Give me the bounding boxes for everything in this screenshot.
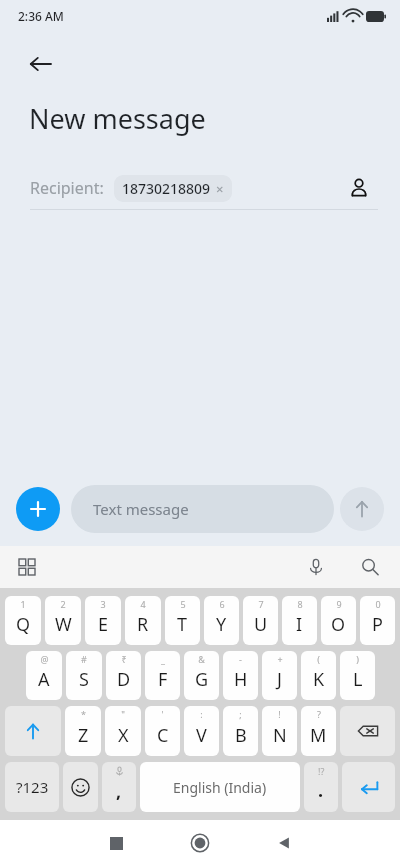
staticText: S [79, 667, 89, 692]
button[interactable]: 18730218809 [114, 175, 232, 202]
staticText: H [234, 667, 248, 692]
staticText: 0 [375, 598, 381, 610]
staticText: ! [278, 708, 281, 720]
button[interactable]: J [262, 651, 297, 700]
button[interactable]: L [340, 651, 375, 700]
button[interactable]: F [145, 651, 180, 700]
staticText: V [196, 723, 207, 748]
button[interactable]: Backspace [340, 706, 395, 756]
staticText: 5 [180, 598, 186, 610]
button[interactable]: T [165, 596, 200, 645]
staticText: 6 [219, 598, 225, 610]
button[interactable]: R [125, 596, 161, 645]
button[interactable]: K [301, 651, 336, 700]
button[interactable]: Y [204, 596, 239, 645]
staticText: & [198, 653, 205, 665]
staticText: 7 [258, 598, 264, 610]
button[interactable]: Voice input [300, 551, 332, 583]
staticText: B [235, 723, 247, 748]
staticText: " [121, 708, 125, 720]
button[interactable]: Q [5, 596, 41, 645]
staticText: C [157, 723, 169, 748]
staticText: * [81, 708, 86, 720]
staticText: W [55, 612, 72, 637]
button[interactable]: Keyboard menu [10, 550, 44, 584]
button[interactable]: N [262, 706, 297, 756]
staticText: ?123 [16, 777, 49, 797]
button[interactable]: Emoji [63, 762, 98, 812]
staticText: _ [161, 653, 165, 665]
staticText: O [331, 612, 346, 637]
button[interactable]: O [321, 596, 356, 645]
staticText: Q [16, 612, 31, 637]
staticText: - [239, 653, 242, 665]
staticText: ( [317, 653, 320, 665]
button[interactable]: Text message [71, 485, 334, 533]
staticText: 2:36 AM [18, 8, 64, 24]
button[interactable]: H [223, 651, 258, 700]
button[interactable]: Comma [102, 762, 136, 812]
button[interactable]: Home [176, 820, 224, 866]
button[interactable]: Z [65, 706, 101, 756]
button[interactable]: C [145, 706, 180, 756]
staticText: 9 [336, 598, 342, 610]
button[interactable]: Recent apps [92, 820, 140, 866]
button[interactable]: V [184, 706, 219, 756]
staticText: P [372, 612, 383, 637]
staticText: 3 [100, 598, 106, 610]
staticText: !? [318, 765, 325, 777]
staticText: J [277, 667, 282, 692]
staticText: 1 [20, 598, 26, 610]
staticText: Y [216, 612, 227, 637]
staticText: Recipient: [30, 177, 104, 199]
staticText: A [38, 667, 50, 692]
staticText: # [81, 653, 87, 665]
button[interactable]: G [184, 651, 219, 700]
button[interactable]: Back [16, 40, 64, 88]
button[interactable]: Search [354, 551, 386, 583]
button[interactable]: Add attachment [16, 487, 60, 531]
staticText: ₹ [121, 653, 127, 665]
staticText: ' [161, 708, 164, 720]
button[interactable]: P [360, 596, 395, 645]
button[interactable]: S [66, 651, 102, 700]
staticText: X [118, 723, 129, 748]
button[interactable]: W [45, 596, 81, 645]
button[interactable]: Shift [5, 706, 61, 756]
button[interactable]: Contacts [340, 169, 378, 207]
staticText: English (India) [173, 778, 267, 797]
staticText: ? [317, 708, 321, 720]
button[interactable]: Space [140, 762, 300, 812]
staticText: Text message [93, 499, 189, 519]
staticText: I [296, 612, 303, 637]
staticText: E [98, 612, 109, 637]
staticText: L [353, 667, 363, 692]
staticText: ; [239, 708, 242, 720]
button[interactable]: D [106, 651, 141, 700]
staticText: T [177, 612, 188, 637]
staticText: D [117, 667, 131, 692]
button[interactable]: Enter [342, 762, 395, 812]
staticText: Z [78, 723, 89, 748]
staticText: R [137, 612, 149, 637]
staticText: M [310, 723, 327, 748]
button[interactable]: E [85, 596, 121, 645]
button[interactable]: A [26, 651, 62, 700]
staticText: 4 [140, 598, 146, 610]
staticText: . [318, 778, 324, 803]
staticText: New message [29, 100, 206, 137]
staticText: , [116, 779, 122, 804]
button[interactable]: U [243, 596, 278, 645]
button[interactable]: Send [340, 487, 384, 531]
button[interactable]: M [301, 706, 336, 756]
button[interactable]: Period [304, 762, 338, 812]
button[interactable]: Symbols [5, 762, 59, 812]
button[interactable]: I [282, 596, 317, 645]
staticText: K [313, 667, 325, 692]
button[interactable]: B [223, 706, 258, 756]
staticText: G [195, 667, 209, 692]
button[interactable]: Back [260, 820, 308, 866]
staticText: ) [356, 653, 359, 665]
staticText: 8 [297, 598, 303, 610]
button[interactable]: X [105, 706, 141, 756]
